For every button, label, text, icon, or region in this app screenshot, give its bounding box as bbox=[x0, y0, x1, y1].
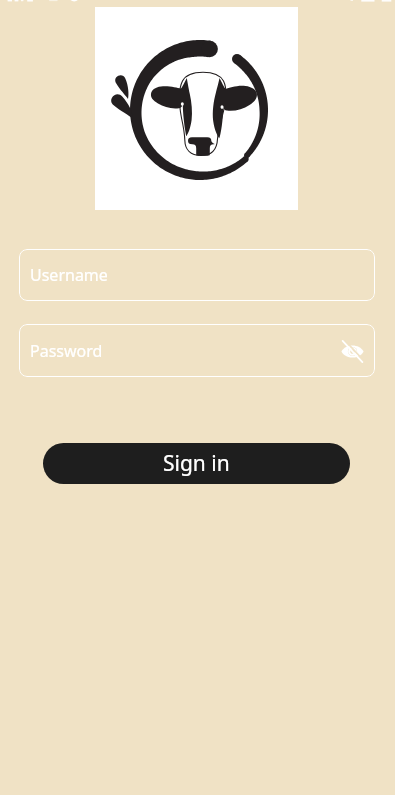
button[interactable]: Sign in bbox=[43, 443, 350, 484]
staticText: Sign in bbox=[163, 449, 230, 478]
button[interactable]: Toggle password visibility bbox=[339, 338, 365, 364]
staticText: Password bbox=[30, 340, 103, 362]
button[interactable]: Password bbox=[19, 324, 375, 377]
staticText: Username bbox=[30, 264, 108, 286]
button[interactable]: Username bbox=[19, 249, 375, 301]
